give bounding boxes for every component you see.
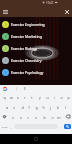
staticText: E — [24, 87, 26, 91]
staticText: h — [42, 105, 45, 110]
staticText: o — [60, 95, 63, 100]
button[interactable]: x — [18, 113, 24, 121]
staticText: g — [35, 105, 38, 110]
button[interactable]: Backspace — [64, 112, 72, 121]
staticText: r — [24, 95, 26, 100]
staticText: E — [5, 47, 7, 51]
button[interactable]: Menu — [0, 6, 11, 17]
staticText: w — [10, 95, 13, 100]
button[interactable]: E — [0, 30, 72, 42]
button[interactable]: i — [51, 93, 57, 101]
button[interactable]: z — [10, 113, 16, 121]
staticText: k — [57, 105, 59, 110]
staticText: Exercise Engineering — [11, 22, 45, 27]
button[interactable]: n — [49, 113, 55, 121]
staticText: Exercise Biology — [11, 46, 38, 51]
staticText: s — [13, 105, 15, 110]
button[interactable]: E — [0, 42, 72, 54]
button[interactable]: h — [40, 103, 46, 111]
staticText: l — [65, 105, 66, 110]
button[interactable]: t — [29, 93, 35, 101]
staticText: a — [6, 105, 8, 110]
button[interactable]: b — [41, 113, 47, 121]
staticText: e — [17, 95, 19, 100]
button[interactable]: E — [0, 54, 72, 66]
button[interactable]: Comma — [9, 121, 14, 132]
staticText: u — [46, 95, 49, 100]
staticText: Exercise Psychology — [11, 70, 44, 75]
button[interactable]: a — [4, 103, 10, 111]
staticText: x — [20, 115, 22, 120]
button[interactable]: u — [44, 93, 50, 101]
button[interactable]: o — [58, 93, 64, 101]
button[interactable]: Close — [61, 6, 72, 17]
button[interactable]: s — [11, 103, 17, 111]
button[interactable]: w — [8, 93, 14, 101]
staticText: E — [5, 23, 7, 27]
button[interactable]: r — [22, 93, 28, 101]
button[interactable]: k — [55, 103, 61, 111]
staticText: . — [60, 125, 61, 129]
button[interactable]: y — [37, 93, 43, 101]
staticText: E — [5, 59, 7, 63]
staticText: t — [31, 95, 33, 100]
button[interactable]: p — [65, 93, 71, 101]
staticText: f — [28, 105, 30, 110]
button[interactable]: m — [56, 113, 62, 121]
staticText: b — [43, 115, 46, 120]
staticText: E — [5, 71, 7, 75]
button[interactable]: c — [25, 113, 31, 121]
button[interactable]: Shift — [0, 112, 8, 121]
staticText: d — [21, 105, 24, 110]
staticText: z — [12, 115, 14, 120]
button[interactable]: Search — [64, 124, 71, 129]
staticText: j — [50, 105, 51, 110]
button[interactable]: l — [62, 103, 68, 111]
staticText: 10:41 — [46, 1, 54, 5]
staticText: y — [39, 95, 41, 100]
button[interactable]: d — [19, 103, 25, 111]
staticText: n — [51, 115, 54, 120]
button[interactable]: E — [0, 18, 72, 30]
staticText: m — [57, 115, 61, 120]
button[interactable]: ?123 — [0, 121, 9, 132]
button[interactable]: E — [0, 66, 72, 78]
button[interactable]: e — [15, 93, 21, 101]
button[interactable]: v — [33, 113, 39, 121]
staticText: q — [3, 95, 6, 100]
staticText: Exercise Chemistry — [11, 58, 42, 63]
button[interactable]: g — [33, 103, 39, 111]
staticText: E — [5, 35, 7, 39]
staticText: c — [27, 115, 29, 120]
button[interactable]: f — [26, 103, 32, 111]
staticText: v — [35, 115, 37, 120]
staticText: , — [11, 125, 12, 129]
staticText: i — [54, 95, 55, 100]
button[interactable]: q — [1, 93, 7, 101]
staticText: ?123 — [2, 125, 8, 128]
staticText: Exercise Marketing — [11, 34, 42, 39]
button[interactable]: j — [47, 103, 53, 111]
button[interactable]: Google — [3, 87, 7, 91]
staticText: p — [67, 95, 70, 100]
